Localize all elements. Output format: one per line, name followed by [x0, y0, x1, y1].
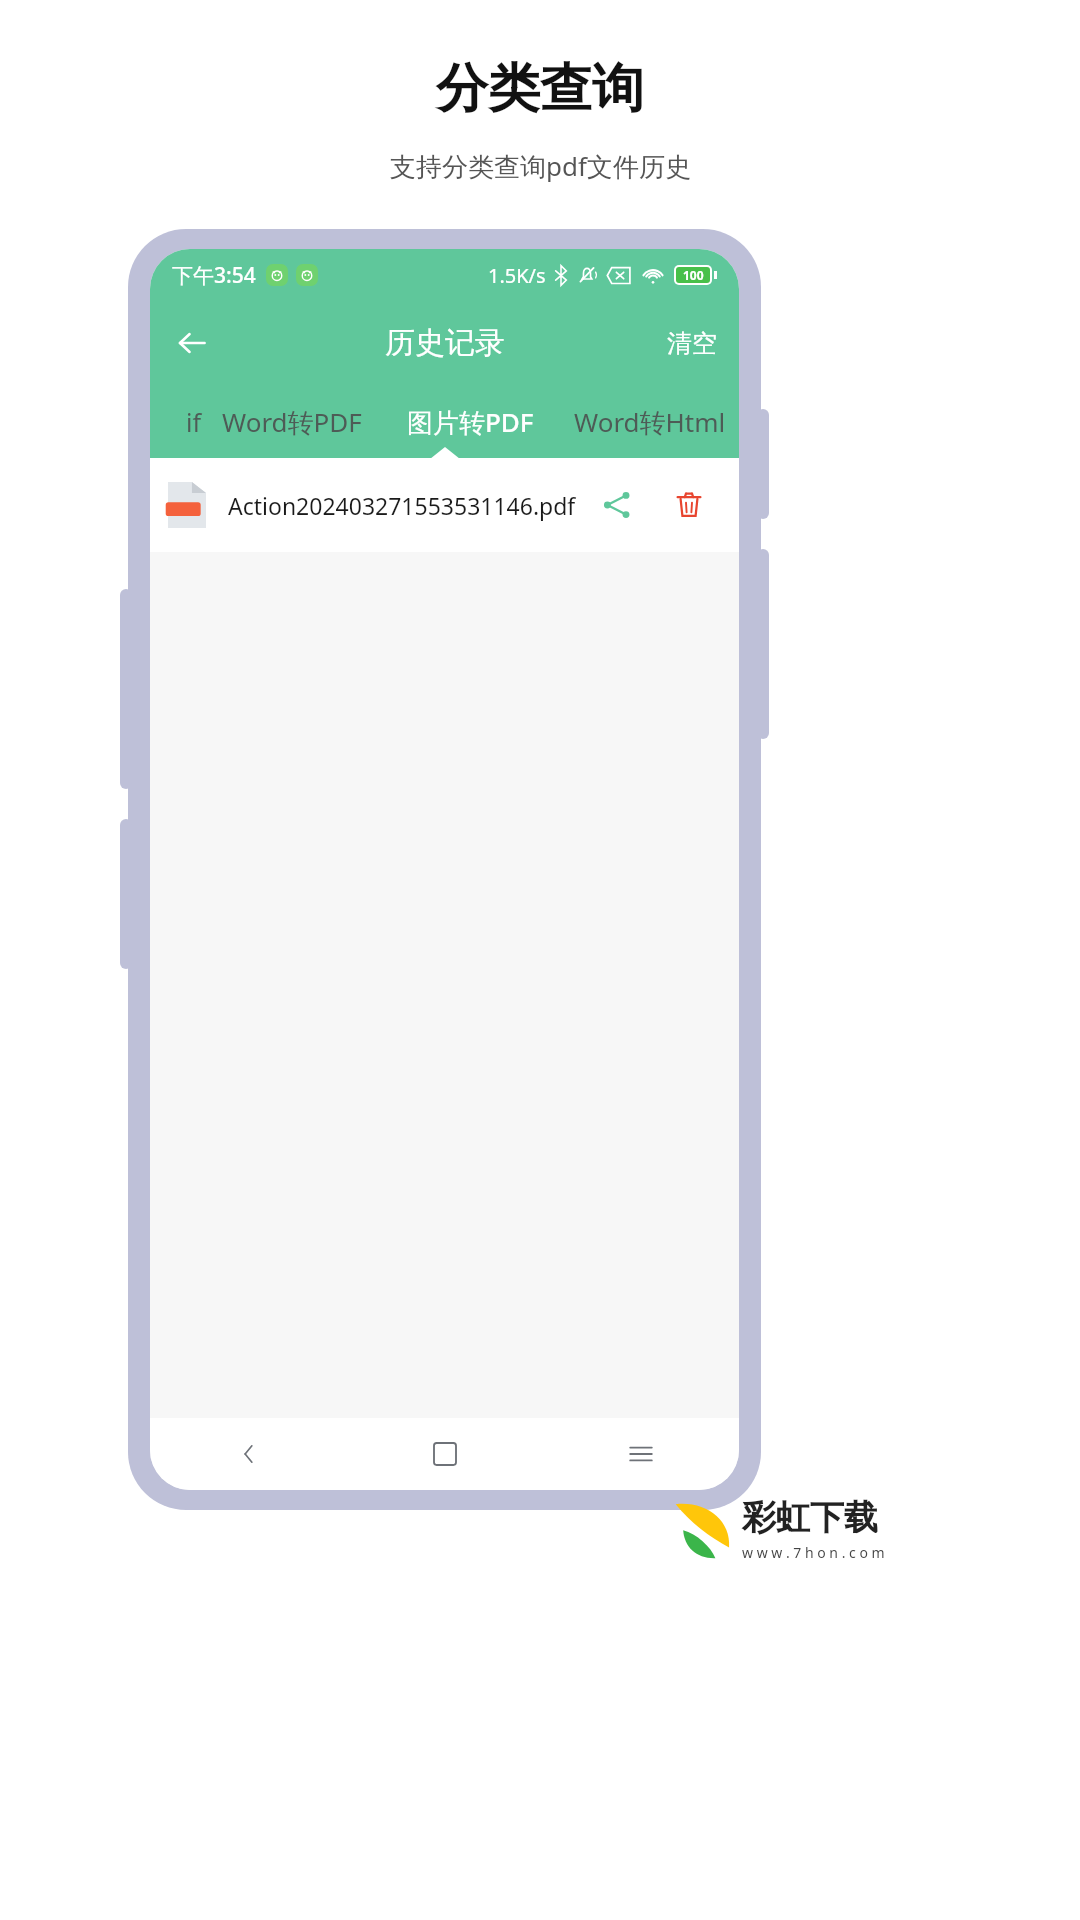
button[interactable]: Back	[150, 1418, 347, 1490]
staticText: Action202403271553531146.pdf	[228, 490, 589, 521]
button[interactable]: Recent apps	[543, 1418, 739, 1490]
button[interactable]: Word转Html	[560, 385, 739, 458]
staticText: 下午3:54	[172, 261, 256, 290]
staticText: w w w . 7 h o n . c o m	[742, 1543, 885, 1562]
button[interactable]: Delete	[661, 477, 717, 533]
button[interactable]: Word转PDF	[202, 385, 381, 458]
staticText: 支持分类查询pdf文件历史	[390, 148, 691, 184]
button[interactable]: Home	[347, 1418, 543, 1490]
staticText: 100	[683, 267, 704, 283]
button[interactable]: Share	[589, 477, 645, 533]
staticText: Word转PDF	[222, 404, 362, 440]
staticText: 清空	[667, 328, 717, 359]
button[interactable]: 清空	[661, 320, 723, 367]
staticText: 1.5K/s	[488, 262, 546, 289]
staticText: 彩虹下载	[742, 1496, 878, 1539]
button[interactable]: if	[150, 385, 202, 458]
staticText: 分类查询	[436, 56, 644, 122]
staticText: 历史记录	[385, 324, 505, 362]
staticText: Word转Html	[574, 404, 726, 440]
button[interactable]: 图片转PDF	[381, 385, 560, 458]
button[interactable]: Action202403271553531146.pdf	[150, 458, 739, 552]
staticText: 图片转PDF	[407, 404, 534, 440]
button[interactable]: Back	[164, 315, 220, 371]
staticText: if	[186, 405, 202, 439]
